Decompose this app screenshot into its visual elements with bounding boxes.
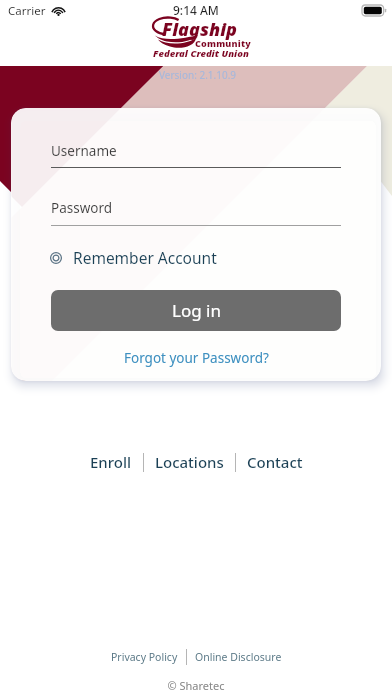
button[interactable]: Forgot your Password?: [124, 349, 269, 367]
button[interactable]: Locations: [155, 452, 224, 472]
staticText: Federal Credit Union: [153, 47, 249, 60]
staticText: © Sharetec: [167, 678, 225, 693]
button[interactable]: Contact: [247, 452, 303, 472]
staticText: Remember Account: [73, 247, 217, 268]
staticText: Carrier: [8, 3, 46, 19]
staticText: Username: [51, 142, 117, 160]
staticText: Log in: [172, 299, 221, 322]
staticText: Flagship: [162, 17, 237, 42]
button[interactable]: Privacy Policy: [111, 650, 178, 664]
staticText: Password: [51, 199, 113, 217]
button[interactable]: Log in: [51, 290, 341, 331]
staticText: Community: [195, 37, 251, 49]
button[interactable]: Enroll: [90, 452, 132, 472]
button[interactable]: Remember Account: [48, 247, 217, 268]
staticText: Version: 2.1.10.9: [159, 68, 237, 82]
button[interactable]: Online Disclosure: [195, 650, 282, 664]
staticText: 9:14 AM: [173, 2, 219, 18]
